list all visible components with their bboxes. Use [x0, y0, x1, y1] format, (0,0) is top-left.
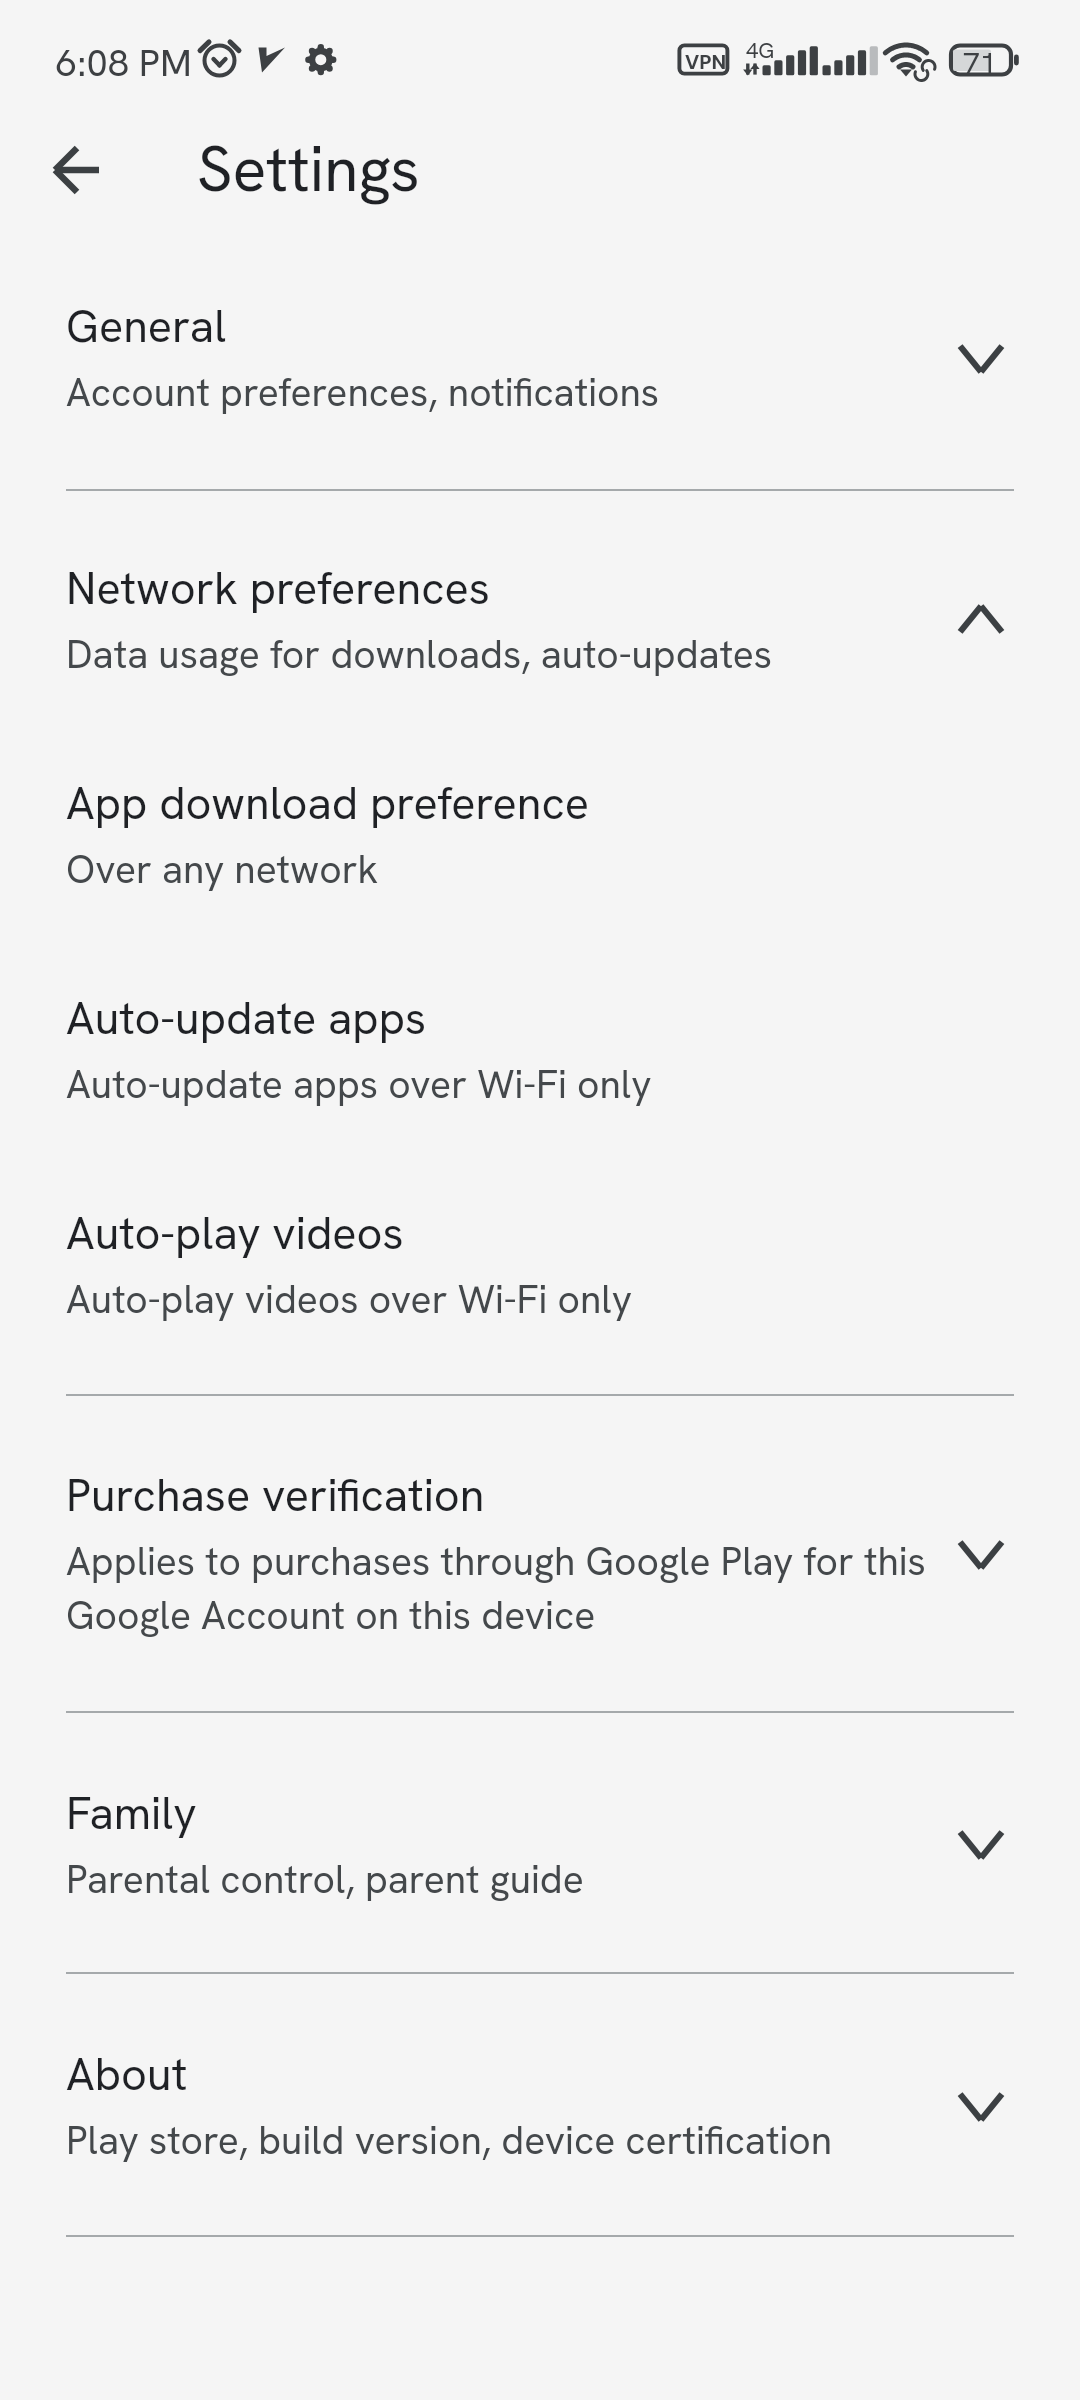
staticText: Over any network	[66, 844, 1026, 895]
button[interactable]: Back	[36, 130, 116, 210]
button[interactable]: Network preferences	[0, 538, 1080, 666]
button[interactable]: Expand Network preferences	[955, 589, 1007, 649]
staticText: App download preference	[66, 774, 590, 833]
staticText: About	[66, 2045, 188, 2104]
staticText: Family	[66, 1784, 197, 1843]
staticText: 6:08 PM	[56, 38, 192, 88]
staticText: Play store, build version, device certif…	[66, 2115, 1026, 2166]
staticText: Parental control, parent guide	[66, 1854, 1026, 1905]
button[interactable]: Expand General	[955, 329, 1007, 389]
staticText: 4G	[746, 36, 775, 65]
staticText: Settings	[197, 128, 420, 210]
staticText: VPN	[685, 48, 727, 76]
staticText: Network preferences	[66, 559, 490, 618]
staticText: Auto-play videos	[66, 1204, 404, 1263]
button[interactable]: Purchase verification	[0, 1445, 1080, 1573]
button[interactable]: Expand Family	[955, 1815, 1007, 1875]
button[interactable]: Auto-update apps	[0, 968, 1080, 1096]
staticText: General	[66, 297, 227, 356]
staticText: Applies to purchases through Google Play…	[66, 1536, 986, 1641]
button[interactable]: App download preference	[0, 753, 1080, 881]
button[interactable]: Expand About	[955, 2077, 1007, 2137]
staticText: Purchase verification	[66, 1466, 485, 1525]
button[interactable]: Auto-play videos	[0, 1183, 1080, 1311]
staticText: Auto-update apps	[66, 989, 427, 1048]
staticText: Account preferences, notifications	[66, 367, 1026, 418]
button[interactable]: Expand Purchase verification	[955, 1525, 1007, 1585]
button[interactable]: Family	[0, 1763, 1080, 1891]
staticText: Auto-play videos over Wi-Fi only	[66, 1274, 1026, 1325]
button[interactable]: General	[0, 276, 1080, 404]
button[interactable]: About	[0, 2024, 1080, 2152]
staticText: 71	[963, 44, 997, 83]
staticText: Data usage for downloads, auto-updates	[66, 629, 1026, 680]
staticText: Auto-update apps over Wi-Fi only	[66, 1059, 1026, 1110]
